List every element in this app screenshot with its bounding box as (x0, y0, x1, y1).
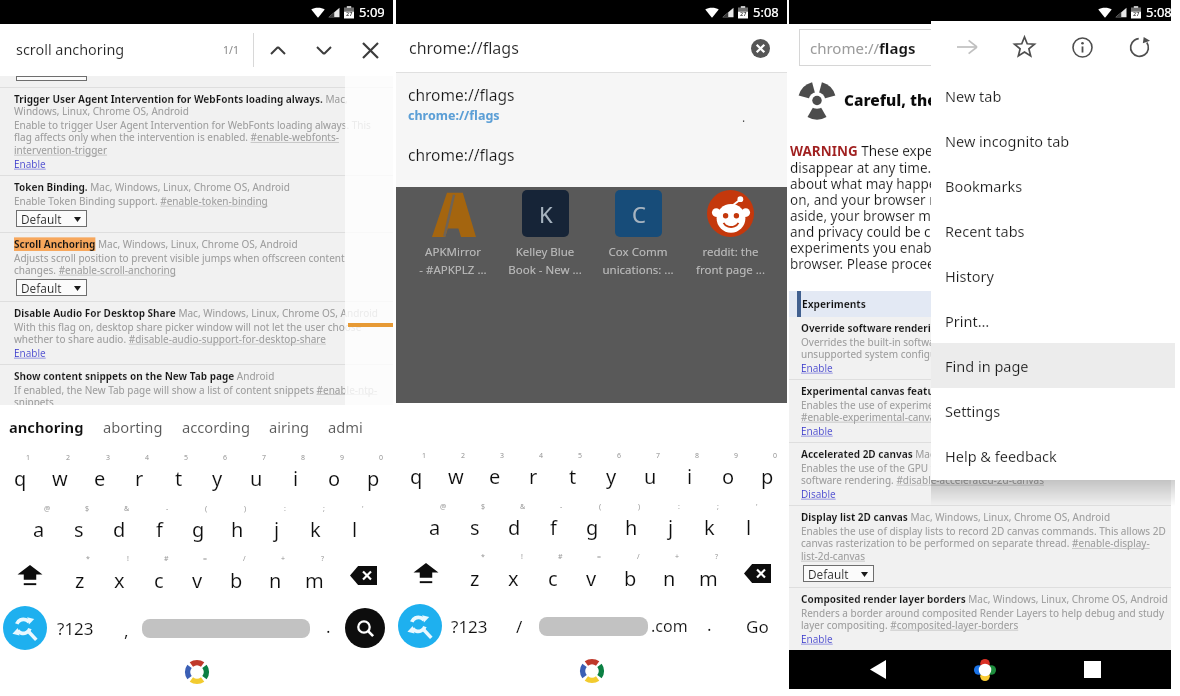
button[interactable]: ; (296, 499, 335, 550)
button[interactable]: ( (573, 497, 612, 548)
button[interactable]: $ (59, 499, 99, 550)
button[interactable]: 3 (80, 448, 120, 499)
button[interactable]: # (533, 548, 572, 599)
button[interactable]: ' (729, 497, 768, 548)
button[interactable]: 4 (120, 448, 159, 499)
button[interactable]: Space (142, 619, 310, 638)
button[interactable]: 4 (514, 446, 553, 497)
button[interactable]: Switch keyboard (3, 606, 47, 650)
button[interactable]: $ (455, 497, 495, 548)
button[interactable]: ) (612, 497, 651, 548)
button[interactable]: 8 (670, 446, 709, 497)
button[interactable]: ( (179, 499, 218, 550)
button[interactable]: airing (269, 417, 309, 437)
button[interactable]: 0 (748, 446, 787, 497)
button[interactable]: . (703, 611, 716, 642)
button[interactable]: ; (690, 497, 729, 548)
button[interactable]: Disable (801, 487, 836, 501)
button[interactable]: Shift (0, 550, 60, 601)
button[interactable]: according (182, 417, 250, 437)
button[interactable]: : (651, 497, 690, 548)
button[interactable]: 5 (159, 448, 198, 499)
button[interactable]: ? (689, 548, 728, 599)
button[interactable]: 9 (315, 448, 354, 499)
button[interactable]: # (139, 550, 178, 601)
button[interactable]: ! (100, 550, 139, 601)
button[interactable]: 1 (396, 446, 436, 497)
button[interactable]: , (120, 613, 133, 644)
button[interactable]: ? (295, 550, 334, 601)
button[interactable]: 2 (436, 446, 475, 497)
button[interactable]: Default (803, 565, 874, 582)
button[interactable]: Enable (14, 157, 46, 171)
button[interactable]: Backspace (728, 548, 787, 599)
button[interactable]: 3 (475, 446, 514, 497)
button[interactable]: chrome://flags (799, 29, 1171, 66)
button[interactable]: reddit: the front page ... (689, 190, 771, 277)
button[interactable]: 6 (592, 446, 631, 497)
button[interactable]: Enable (801, 424, 833, 438)
button[interactable]: 5 (553, 446, 592, 497)
button[interactable]: Bookmarks (931, 163, 1175, 208)
button[interactable]: + (650, 548, 689, 599)
button[interactable]: anchoring (9, 417, 84, 437)
button[interactable]: admi (328, 417, 363, 437)
button[interactable]: Go (742, 611, 773, 642)
button[interactable]: Bookmark (1003, 26, 1045, 68)
button[interactable]: & (99, 499, 139, 550)
button[interactable]: Switch keyboard (398, 604, 442, 648)
button[interactable]: ) (218, 499, 257, 550)
button[interactable]: : (257, 499, 296, 550)
button[interactable]: History (931, 253, 1175, 298)
button[interactable]: * (456, 548, 494, 599)
button[interactable]: 6 (198, 448, 237, 499)
button[interactable]: New tab (931, 73, 1175, 118)
button[interactable]: chrome://flags (396, 144, 787, 174)
button[interactable]: 1 (0, 448, 40, 499)
button[interactable]: Backspace (334, 550, 393, 601)
button[interactable]: Back (858, 650, 897, 689)
button[interactable]: / (217, 550, 256, 601)
button[interactable]: Shift (396, 548, 456, 599)
button[interactable]: aborting (103, 417, 163, 437)
button[interactable]: APKMirror - #APKPLZ ... (412, 190, 494, 277)
button[interactable]: Previous result (264, 36, 292, 64)
button[interactable]: ' (335, 499, 374, 550)
button[interactable]: = (572, 548, 611, 599)
button[interactable]: 8 (276, 448, 315, 499)
button[interactable]: - (534, 497, 573, 548)
button[interactable]: Recent tabs (931, 208, 1175, 253)
button[interactable]: chrome://flags (396, 84, 787, 125)
button[interactable]: Next result (310, 36, 338, 64)
button[interactable]: 0 (354, 448, 393, 499)
button[interactable]: Space (539, 617, 648, 636)
button[interactable]: = (178, 550, 217, 601)
button[interactable]: Enable (14, 346, 46, 360)
button[interactable]: K (504, 190, 586, 277)
button[interactable]: @ (19, 499, 59, 550)
button[interactable]: Page info (1061, 26, 1103, 68)
button[interactable]: 7 (237, 448, 276, 499)
button[interactable]: - (139, 499, 179, 550)
button[interactable]: New incognito tab (931, 118, 1175, 163)
button[interactable]: Recents (1073, 650, 1112, 689)
button[interactable]: Home (965, 650, 1004, 689)
button[interactable]: . (322, 613, 335, 644)
button[interactable]: C (597, 190, 679, 277)
button[interactable]: ?123 (447, 611, 492, 642)
button[interactable]: & (495, 497, 534, 548)
button[interactable]: Search (345, 608, 385, 648)
button[interactable]: Default (16, 210, 87, 227)
button[interactable]: Help & feedback (931, 433, 1175, 478)
button[interactable]: Enable (801, 361, 833, 375)
button[interactable]: ! (494, 548, 533, 599)
button[interactable]: Default (16, 279, 87, 296)
button[interactable]: Print… (931, 298, 1175, 343)
button[interactable]: 9 (709, 446, 748, 497)
button[interactable]: Close find bar (355, 35, 385, 65)
button[interactable]: Reload (1118, 26, 1160, 68)
button[interactable]: * (60, 550, 100, 601)
button[interactable]: / (512, 611, 527, 642)
button[interactable]: .com (650, 614, 689, 638)
button[interactable]: Enable (801, 632, 833, 646)
